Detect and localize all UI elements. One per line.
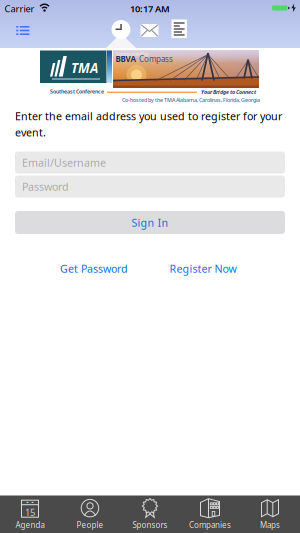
button[interactable]: Register Now xyxy=(143,260,263,276)
staticText: 15 xyxy=(25,506,35,518)
button[interactable]: Password xyxy=(15,175,285,197)
button[interactable]: TMA xyxy=(38,50,262,104)
button[interactable] xyxy=(0,20,44,44)
staticText: Email/Username xyxy=(22,155,106,170)
staticText: 10:17 AM xyxy=(130,2,170,15)
staticText: Password xyxy=(22,179,69,194)
button[interactable]: Sign In xyxy=(15,211,285,234)
button[interactable]: Sponsors xyxy=(120,495,180,533)
staticText: TMA xyxy=(71,59,98,77)
staticText: Co-hosted by the TMA Alabama, Carolinas,… xyxy=(122,96,260,104)
button[interactable] xyxy=(104,14,138,44)
button[interactable]: 15 xyxy=(0,495,60,533)
staticText: Sponsored by xyxy=(116,50,149,58)
staticText: Get Password xyxy=(60,261,128,276)
staticText: Register Now xyxy=(169,261,236,276)
staticText: Your Bridge to Connect xyxy=(201,88,256,96)
button[interactable] xyxy=(164,15,194,43)
button[interactable] xyxy=(134,17,164,45)
staticText: Southeast Conference xyxy=(50,88,104,95)
staticText: Sign In xyxy=(131,215,168,230)
button[interactable]: People xyxy=(60,495,120,533)
button[interactable]: Maps xyxy=(240,495,300,533)
button[interactable]: Get Password xyxy=(34,260,154,276)
staticText: Maps xyxy=(260,520,280,530)
button[interactable]: Companies xyxy=(180,495,240,533)
staticText: Compass xyxy=(139,54,173,64)
staticText: Sponsors xyxy=(132,520,167,530)
staticText: event. xyxy=(15,125,46,139)
staticText: Companies xyxy=(189,520,231,530)
staticText: BBVA xyxy=(115,54,136,64)
staticText: Agenda xyxy=(15,520,44,530)
staticText: Enter the email address you used to regi… xyxy=(15,109,282,123)
staticText: People xyxy=(76,520,103,530)
button[interactable]: Email/Username xyxy=(15,151,285,173)
staticText: Carrier xyxy=(4,2,34,15)
